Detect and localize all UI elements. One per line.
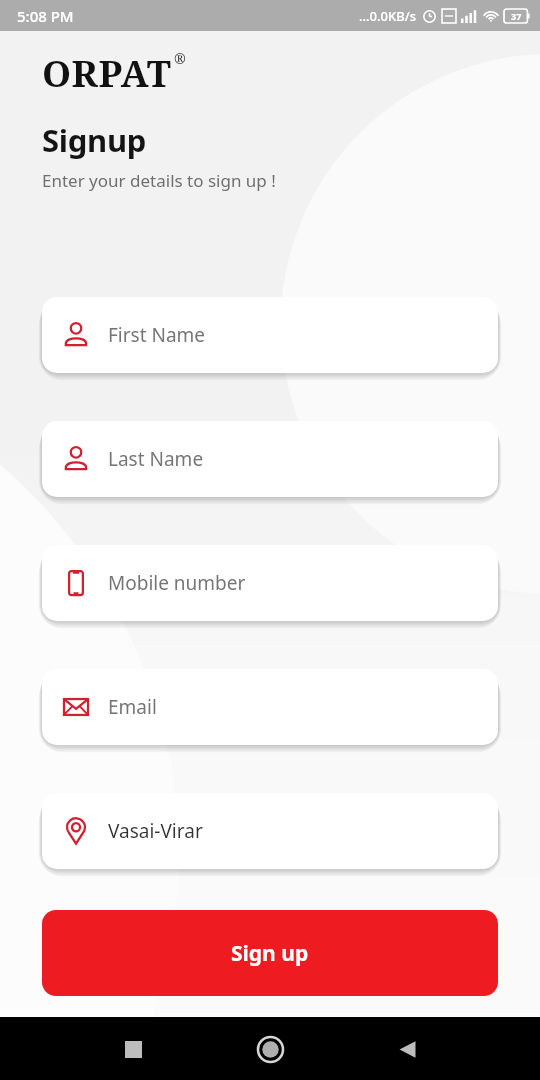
staticText: ORPAT [42, 47, 172, 97]
staticText: ...0.0KB/s [359, 7, 417, 25]
button[interactable]: Email [42, 669, 498, 745]
staticText: Last Name [108, 446, 204, 472]
button[interactable]: Last Name [42, 421, 498, 497]
staticText: First Name [108, 322, 206, 348]
button[interactable]: Back [384, 1026, 430, 1072]
staticText: Vasai-Virar [108, 818, 203, 844]
staticText: Mobile number [108, 570, 246, 596]
staticText: ® [174, 49, 186, 68]
staticText: Enter your details to sign up ! [42, 169, 276, 192]
button[interactable]: Recent apps [110, 1026, 156, 1072]
button[interactable]: Home [247, 1026, 293, 1072]
button[interactable]: First Name [42, 297, 498, 373]
staticText: Sign up [231, 939, 309, 968]
button[interactable]: Vasai-Virar [42, 793, 498, 869]
staticText: 37 [511, 10, 522, 22]
staticText: Signup [42, 119, 147, 161]
button[interactable]: Mobile number [42, 545, 498, 621]
staticText: Email [108, 694, 157, 720]
staticText: 5:08 PM [17, 6, 74, 26]
button[interactable]: Sign up [42, 910, 498, 996]
